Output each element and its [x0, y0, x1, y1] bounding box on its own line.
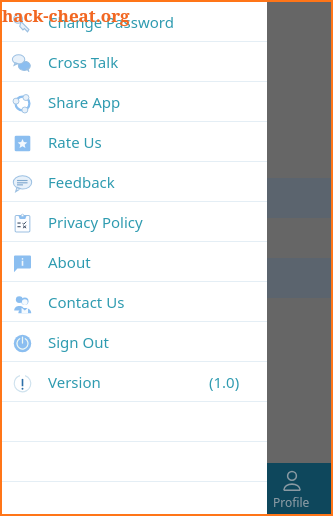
staticText: Version	[48, 372, 101, 392]
staticText: Contact Us	[48, 292, 125, 312]
staticText: Sign Out	[48, 332, 109, 352]
staticText: hack-cheat.org	[2, 4, 130, 27]
staticText: Change Password	[48, 12, 174, 32]
staticText: (1.0)	[209, 372, 240, 392]
staticText: Cross Talk	[48, 52, 119, 72]
button[interactable]: Cross Talk	[0, 42, 267, 82]
button[interactable]: Share App	[0, 82, 267, 122]
staticText: Profile	[273, 494, 310, 510]
button[interactable]	[0, 463, 84, 516]
button[interactable]: Rate Us	[0, 122, 267, 162]
staticText: Feedback	[48, 172, 115, 192]
button[interactable]	[167, 463, 250, 516]
staticText: Rate Us	[48, 132, 102, 152]
button[interactable]: Change Password	[0, 2, 267, 42]
button[interactable]: About	[0, 242, 267, 282]
staticText: Share App	[48, 92, 121, 112]
button[interactable]: Contact Us	[0, 282, 267, 322]
staticText: Privacy Policy	[48, 212, 143, 232]
button[interactable]: Version	[0, 362, 267, 402]
staticText: About	[48, 252, 91, 272]
button[interactable]: Sign Out	[0, 322, 267, 362]
button[interactable]: Privacy Policy	[0, 202, 267, 242]
button[interactable]: Profile	[250, 463, 333, 516]
button[interactable]: Feedback	[0, 162, 267, 202]
button[interactable]	[84, 463, 167, 516]
